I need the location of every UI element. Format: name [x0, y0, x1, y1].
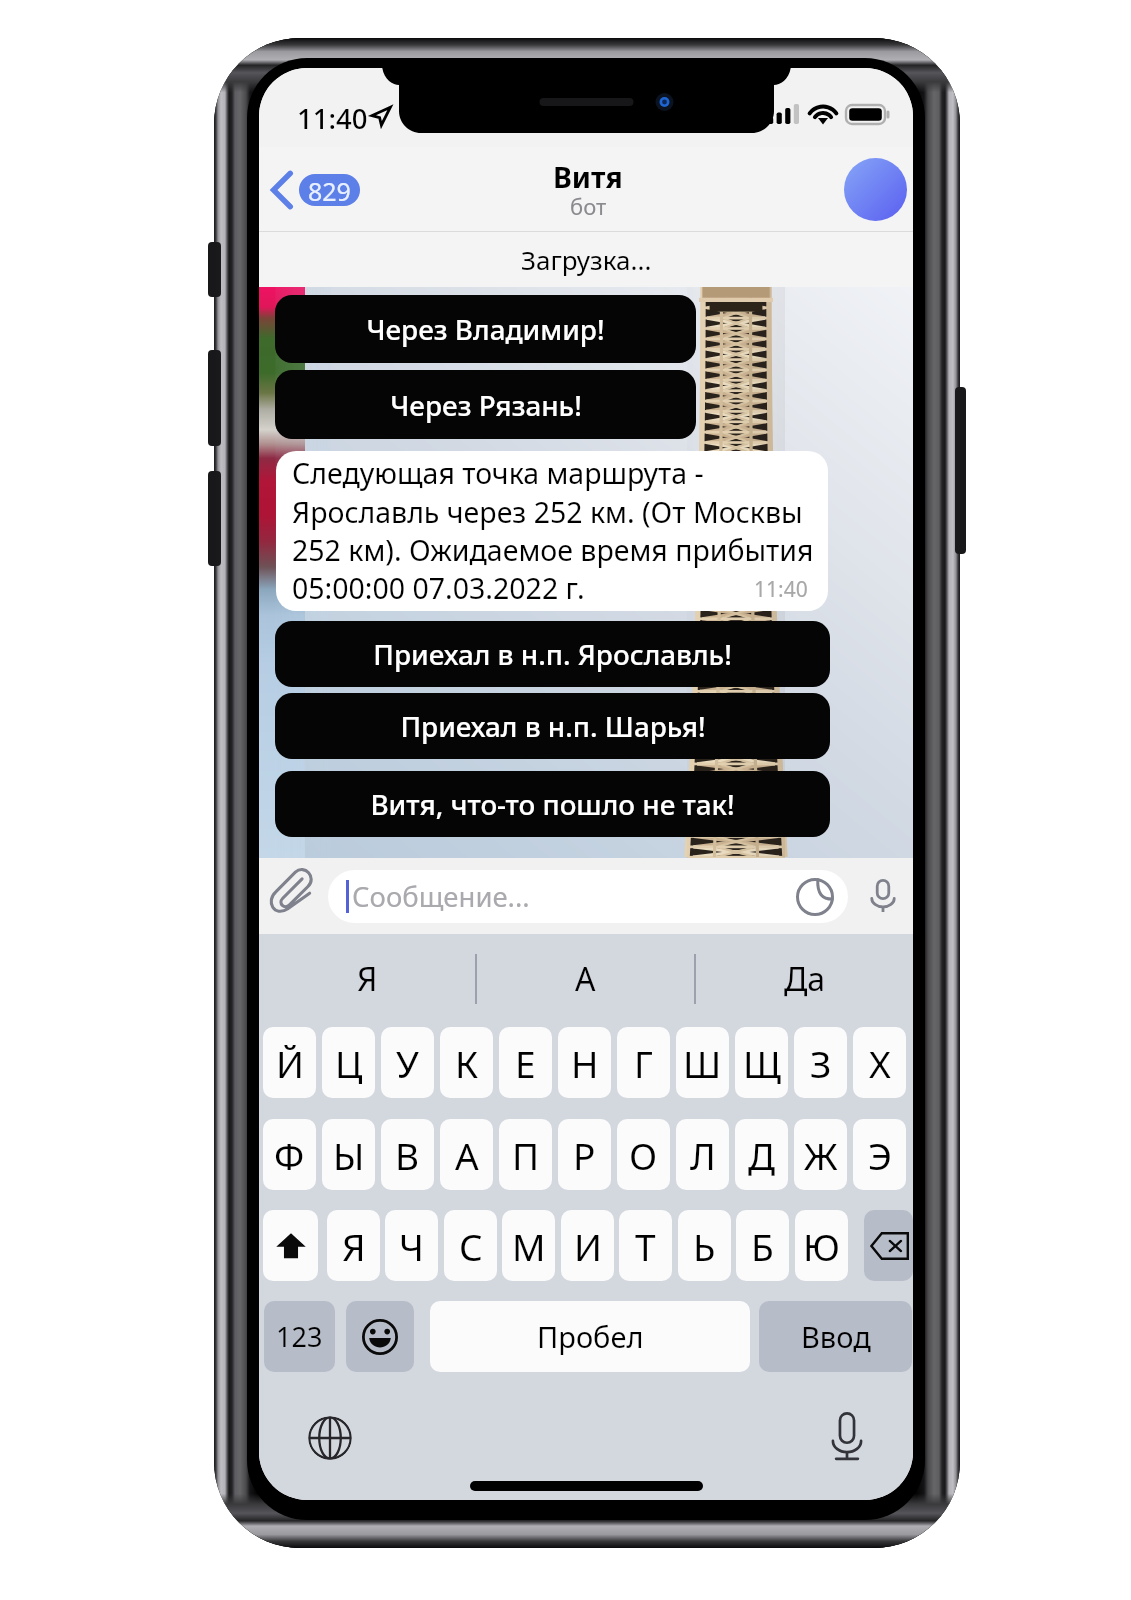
- button[interactable]: Shift: [263, 1210, 318, 1281]
- staticText: У: [396, 1038, 419, 1088]
- staticText: О: [629, 1130, 658, 1180]
- staticText: 11:40: [297, 100, 368, 137]
- button[interactable]: Ч: [385, 1210, 438, 1281]
- button[interactable]: Э: [853, 1119, 906, 1190]
- staticText: Да: [784, 957, 826, 1001]
- staticText: Л: [690, 1130, 716, 1180]
- staticText: Т: [635, 1221, 656, 1271]
- staticText: бот: [570, 191, 607, 221]
- button[interactable]: Сообщение...: [328, 870, 848, 923]
- button[interactable]: Profile picture: [844, 158, 907, 221]
- button[interactable]: Change keyboard: [307, 1415, 353, 1461]
- button[interactable]: Да: [696, 936, 913, 1022]
- button[interactable]: К: [440, 1027, 493, 1098]
- button[interactable]: Х: [853, 1027, 906, 1098]
- button[interactable]: Ж: [794, 1119, 847, 1190]
- staticText: Е: [515, 1038, 536, 1088]
- button[interactable]: Record voice message: [865, 871, 901, 921]
- button[interactable]: А: [440, 1119, 493, 1190]
- staticText: П: [512, 1130, 540, 1180]
- staticText: Ц: [335, 1038, 363, 1088]
- staticText: Приехал в н.п. Шарья!: [400, 707, 706, 745]
- button[interactable]: Ц: [322, 1027, 375, 1098]
- staticText: В: [395, 1130, 420, 1180]
- staticText: Пробел: [537, 1317, 644, 1356]
- button[interactable]: Ю: [795, 1210, 848, 1281]
- button[interactable]: Пробел: [430, 1301, 750, 1372]
- staticText: Приехал в н.п. Ярославль!: [373, 635, 732, 673]
- button[interactable]: Ш: [676, 1027, 729, 1098]
- button[interactable]: Ф: [263, 1119, 316, 1190]
- staticText: Ш: [683, 1038, 722, 1088]
- button[interactable]: П: [499, 1119, 552, 1190]
- staticText: 123: [276, 1318, 323, 1355]
- button[interactable]: Р: [558, 1119, 611, 1190]
- staticText: Я: [342, 1221, 366, 1271]
- staticText: З: [810, 1038, 832, 1088]
- staticText: Й: [276, 1038, 304, 1088]
- staticText: 829: [308, 174, 351, 206]
- staticText: Ы: [333, 1130, 365, 1180]
- button[interactable]: С: [444, 1210, 497, 1281]
- staticText: Н: [571, 1038, 599, 1088]
- staticText: Следующая точка маршрута - Ярославль чер…: [292, 454, 814, 607]
- staticText: Через Рязань!: [390, 386, 582, 424]
- button[interactable]: Л: [676, 1119, 729, 1190]
- button[interactable]: Я: [259, 936, 475, 1022]
- staticText: Ю: [803, 1221, 840, 1271]
- staticText: Витя, что-то пошло не так!: [370, 785, 735, 823]
- button[interactable]: Т: [619, 1210, 672, 1281]
- staticText: Э: [868, 1130, 892, 1180]
- button[interactable]: И: [561, 1210, 614, 1281]
- button[interactable]: 123: [264, 1301, 335, 1372]
- button[interactable]: Й: [263, 1027, 316, 1098]
- button[interactable]: Приехал в н.п. Шарья!: [275, 693, 830, 759]
- staticText: А: [575, 957, 596, 1001]
- button[interactable]: Я: [327, 1210, 380, 1281]
- staticText: С: [459, 1221, 483, 1271]
- button[interactable]: Ы: [322, 1119, 375, 1190]
- button[interactable]: Через Рязань!: [275, 370, 696, 439]
- button[interactable]: Д: [735, 1119, 788, 1190]
- button[interactable]: Щ: [735, 1027, 788, 1098]
- button[interactable]: Backspace: [864, 1210, 913, 1281]
- button[interactable]: Б: [736, 1210, 789, 1281]
- button[interactable]: Г: [617, 1027, 670, 1098]
- staticText: Через Владимир!: [366, 310, 605, 348]
- staticText: Ч: [399, 1221, 424, 1271]
- button[interactable]: Attach file: [271, 868, 313, 910]
- button[interactable]: А: [477, 936, 694, 1022]
- button[interactable]: Н: [558, 1027, 611, 1098]
- staticText: Витя: [553, 158, 623, 197]
- button[interactable]: Е: [499, 1027, 552, 1098]
- button[interactable]: Ь: [678, 1210, 731, 1281]
- staticText: Ф: [274, 1130, 305, 1180]
- staticText: Г: [634, 1038, 653, 1088]
- staticText: К: [455, 1038, 479, 1088]
- staticText: М: [512, 1221, 546, 1271]
- button[interactable]: В: [381, 1119, 434, 1190]
- staticText: А: [455, 1130, 479, 1180]
- staticText: Ввод: [801, 1317, 871, 1356]
- button[interactable]: Через Владимир!: [275, 295, 696, 363]
- button[interactable]: З: [794, 1027, 847, 1098]
- button[interactable]: О: [617, 1119, 670, 1190]
- staticText: Загрузка...: [521, 242, 652, 277]
- staticText: Ь: [693, 1221, 716, 1271]
- button[interactable]: Emoji keyboard: [346, 1301, 414, 1372]
- button[interactable]: Приехал в н.п. Ярославль!: [275, 621, 830, 687]
- staticText: Я: [357, 957, 378, 1001]
- button[interactable]: Витя, что-то пошло не так!: [275, 771, 830, 837]
- staticText: Ж: [804, 1130, 838, 1180]
- button[interactable]: У: [381, 1027, 434, 1098]
- staticText: Х: [869, 1038, 891, 1088]
- button[interactable]: Ввод: [759, 1301, 912, 1372]
- button[interactable]: Dictation: [830, 1411, 864, 1461]
- staticText: 11:40: [754, 575, 808, 604]
- staticText: Д: [748, 1130, 775, 1180]
- staticText: Б: [751, 1221, 774, 1271]
- staticText: И: [574, 1221, 602, 1271]
- button[interactable]: М: [502, 1210, 555, 1281]
- staticText: Р: [573, 1130, 596, 1180]
- button[interactable]: Back: [266, 159, 365, 221]
